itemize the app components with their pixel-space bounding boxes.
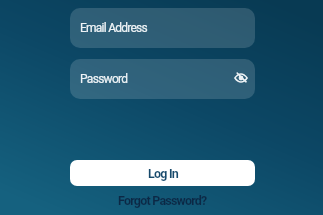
staticText: Log In bbox=[148, 166, 178, 181]
staticText: Forgot Password? bbox=[118, 193, 207, 208]
staticText: Email Address bbox=[80, 21, 148, 35]
staticText: Password bbox=[80, 72, 128, 86]
button[interactable]: Password bbox=[70, 59, 255, 99]
button[interactable]: Log In bbox=[70, 160, 255, 186]
button[interactable]: Forgot Password? bbox=[70, 193, 255, 208]
button[interactable]: Email Address bbox=[70, 8, 255, 48]
button[interactable] bbox=[234, 71, 248, 85]
